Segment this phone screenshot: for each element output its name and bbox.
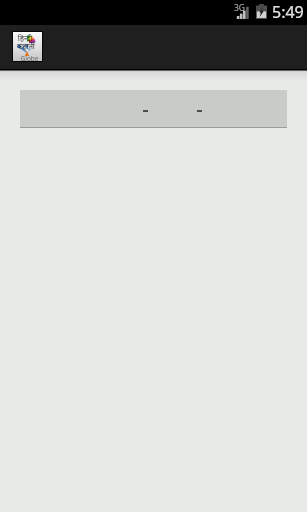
button[interactable]: Select chapter xyxy=(20,90,287,128)
button[interactable]: Globe, app home xyxy=(13,32,42,61)
staticText: कहानी xyxy=(17,41,35,51)
staticText: Globe xyxy=(20,54,39,63)
staticText: 5:49 xyxy=(272,1,304,23)
staticText: 3G xyxy=(234,2,246,14)
staticText: हिन्दी xyxy=(18,33,33,43)
